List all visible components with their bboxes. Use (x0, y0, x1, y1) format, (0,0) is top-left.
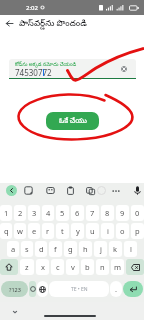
button[interactable]: i (101, 223, 114, 239)
staticText: 2:02 (26, 4, 38, 12)
staticText: 0 (135, 208, 140, 218)
button[interactable]: b (81, 259, 94, 275)
button[interactable]: 4 (42, 205, 54, 221)
staticText: పాస్‌వర్డ్‌ను పొందండి (19, 17, 87, 30)
staticText: r (46, 226, 50, 236)
staticText: v (71, 262, 75, 272)
button[interactable]: Change language (37, 281, 48, 297)
button[interactable]: 2 (14, 205, 26, 221)
staticText: b (85, 262, 90, 272)
button[interactable]: m (111, 259, 124, 275)
button[interactable]: n (96, 259, 109, 275)
staticText: . (115, 284, 118, 294)
button[interactable]: c (51, 259, 64, 275)
button[interactable]: Clear text (121, 66, 127, 72)
staticText: 1 (4, 208, 9, 218)
button[interactable]: v (66, 259, 79, 275)
staticText: j (100, 244, 102, 254)
button[interactable]: w (14, 223, 26, 239)
button[interactable]: TE • EN (49, 281, 109, 297)
staticText: m (114, 262, 122, 272)
button[interactable]: Tool 4 (86, 186, 95, 195)
staticText: a (11, 244, 16, 254)
staticText: ఓకే చేయు (59, 116, 87, 127)
button[interactable]: q (0, 223, 12, 239)
button[interactable]: d (35, 241, 47, 257)
staticText: c (56, 262, 60, 272)
button[interactable]: Hide keyboard (9, 306, 20, 317)
button[interactable]: ?123 (1, 281, 28, 297)
staticText: f (54, 244, 57, 254)
button[interactable]: o (116, 223, 129, 239)
staticText: e (32, 226, 37, 236)
button[interactable]: 7 (86, 205, 99, 221)
button[interactable]: r (42, 223, 54, 239)
button[interactable]: Tool 1 (24, 186, 33, 195)
button[interactable]: j (94, 241, 107, 257)
button[interactable]: Backspace (126, 259, 144, 275)
button[interactable]: t (56, 223, 69, 239)
button[interactable]: h (79, 241, 92, 257)
staticText: d (39, 244, 44, 254)
button[interactable]: y (71, 223, 84, 239)
button[interactable]: g (64, 241, 77, 257)
button[interactable]: Back (0, 15, 18, 31)
button[interactable]: z (20, 259, 34, 275)
button[interactable]: Close toolbar (6, 185, 17, 196)
staticText: u (90, 226, 95, 236)
staticText: x (41, 262, 45, 272)
button[interactable]: Emoji (29, 281, 36, 297)
button[interactable]: 9 (116, 205, 129, 221)
staticText: p (135, 226, 140, 236)
staticText: w (17, 226, 23, 236)
staticText: 4 (46, 208, 51, 218)
button[interactable]: k (109, 241, 122, 257)
button[interactable]: s (21, 241, 33, 257)
staticText: i (107, 226, 109, 236)
button[interactable]: . (110, 281, 122, 297)
staticText: 74530772 (15, 67, 52, 78)
staticText: k (113, 244, 118, 254)
button[interactable]: 1 (0, 205, 12, 221)
button[interactable]: Tool 2 (46, 186, 55, 195)
staticText: l (130, 244, 132, 254)
button[interactable]: 5 (56, 205, 69, 221)
button[interactable]: కోడ్‌ను అక్కడ నమోదు చేయండి (9, 59, 136, 79)
button[interactable]: Enter (123, 281, 143, 297)
staticText: t (61, 226, 64, 236)
button[interactable]: u (86, 223, 99, 239)
button[interactable]: 0 (131, 205, 144, 221)
button[interactable]: 3 (28, 205, 40, 221)
button[interactable]: Shift (0, 259, 18, 275)
button[interactable]: e (28, 223, 40, 239)
staticText: 5 (60, 208, 65, 218)
button[interactable]: x (36, 259, 49, 275)
button[interactable]: l (124, 241, 137, 257)
staticText: h (83, 244, 88, 254)
staticText: n (100, 262, 105, 272)
staticText: g (68, 244, 73, 254)
staticText: y (76, 226, 80, 236)
staticText: s (25, 244, 29, 254)
staticText: TE • EN (71, 286, 88, 293)
button[interactable]: More options (111, 186, 121, 196)
staticText: 7 (90, 208, 95, 218)
staticText: 9 (120, 208, 125, 218)
staticText: q (4, 226, 9, 236)
button[interactable]: 6 (71, 205, 84, 221)
button[interactable]: Tool 3 (66, 186, 75, 195)
staticText: 3 (32, 208, 37, 218)
button[interactable]: f (49, 241, 62, 257)
staticText: 2 (18, 208, 23, 218)
staticText: z (25, 262, 29, 272)
button[interactable]: a (7, 241, 19, 257)
button[interactable]: ఓకే చేయు (46, 112, 99, 130)
button[interactable]: p (131, 223, 144, 239)
staticText: ?123 (9, 286, 21, 293)
staticText: కోడ్‌ను అక్కడ నమోదు చేయండి (15, 61, 77, 69)
staticText: o (120, 226, 125, 236)
button[interactable]: Voice input (133, 186, 142, 195)
staticText: 8 (105, 208, 110, 218)
button[interactable]: 8 (101, 205, 114, 221)
staticText: 6 (75, 208, 80, 218)
